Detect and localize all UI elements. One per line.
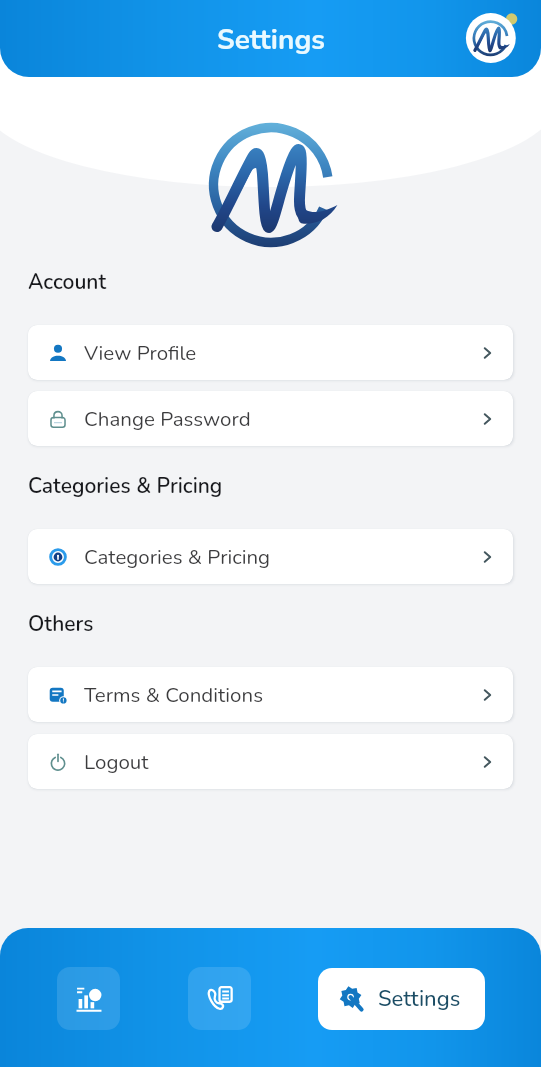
staticText: Change Password xyxy=(84,405,251,433)
button[interactable]: Reports xyxy=(57,967,120,1030)
button[interactable]: Contacts xyxy=(188,967,251,1030)
staticText: View Profile xyxy=(84,339,197,367)
button[interactable]: Settings xyxy=(318,968,485,1030)
button[interactable]: Terms & Conditions xyxy=(28,667,513,722)
staticText: Categories & Pricing xyxy=(28,472,223,501)
button[interactable]: View Profile xyxy=(28,325,513,380)
staticText: Others xyxy=(28,610,94,639)
staticText: Logout xyxy=(84,748,149,776)
staticText: Account xyxy=(28,268,107,297)
staticText: Settings xyxy=(217,21,325,59)
button[interactable]: Change Password xyxy=(28,391,513,446)
button[interactable]: Logout xyxy=(28,734,513,789)
button[interactable]: Profile xyxy=(466,11,520,65)
button[interactable]: Categories & Pricing xyxy=(28,529,513,584)
staticText: Categories & Pricing xyxy=(84,543,271,571)
staticText: Terms & Conditions xyxy=(84,681,263,709)
staticText: Settings xyxy=(378,984,461,1014)
